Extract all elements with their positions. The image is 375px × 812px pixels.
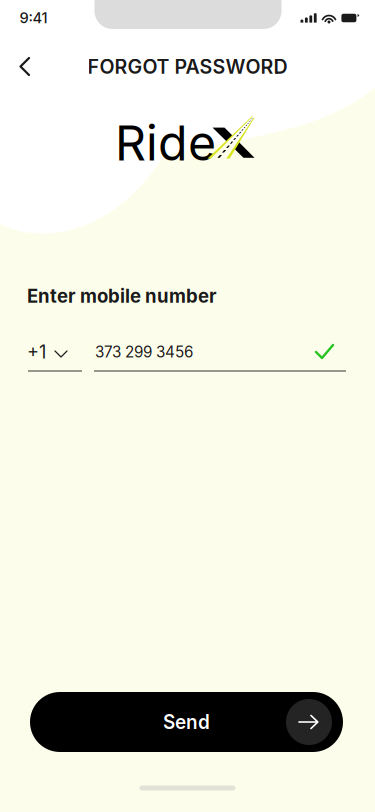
staticText: Send	[163, 710, 210, 733]
staticText: FORGOT PASSWORD	[87, 55, 287, 78]
button[interactable]: +1	[27, 337, 81, 367]
staticText: 373 299 3456	[95, 343, 193, 361]
button[interactable]: Back	[5, 41, 49, 91]
staticText: Enter mobile number	[27, 285, 217, 307]
button[interactable]: Send	[30, 692, 343, 752]
staticText: Ride	[115, 114, 216, 172]
staticText: +1	[27, 341, 46, 363]
staticText: 9:41	[19, 9, 47, 27]
